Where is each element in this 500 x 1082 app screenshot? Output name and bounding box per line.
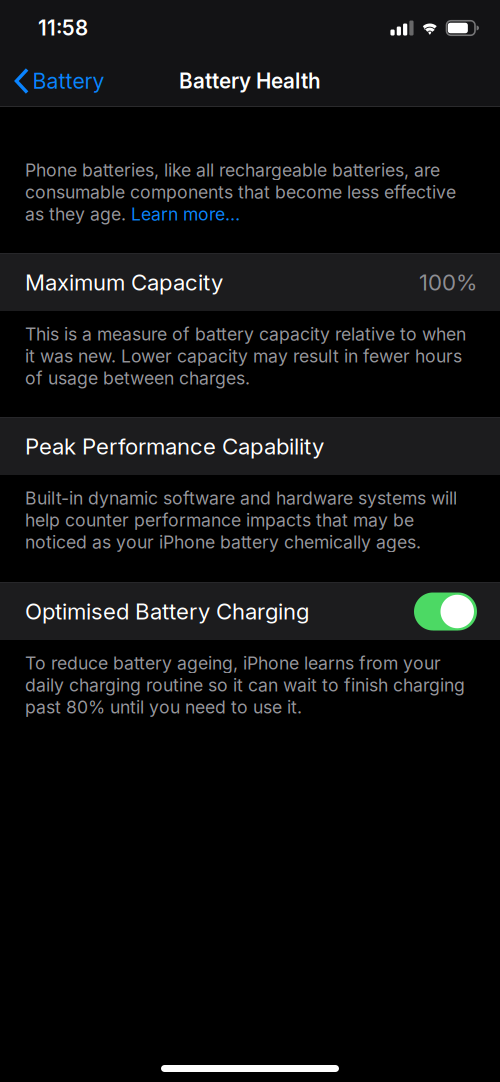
button[interactable]: Learn more… xyxy=(131,203,240,225)
button[interactable]: Optimised Battery Charging xyxy=(0,582,500,640)
staticText: This is a measure of battery capacity re… xyxy=(25,323,466,345)
staticText: consumable components that become less e… xyxy=(25,181,456,203)
staticText: Battery Health xyxy=(179,68,321,93)
staticText: it was new. Lower capacity may result in… xyxy=(25,345,462,367)
staticText: Learn more… xyxy=(131,203,240,225)
staticText: Optimised Battery Charging xyxy=(25,598,309,625)
staticText: help counter performance impacts that ma… xyxy=(25,509,414,531)
staticText: To reduce battery ageing, iPhone learns … xyxy=(25,652,441,674)
staticText: 11:58 xyxy=(38,15,88,40)
button[interactable]: Maximum Capacity xyxy=(0,253,500,311)
staticText: as they age. xyxy=(25,203,131,225)
staticText: Phone batteries, like all rechargeable b… xyxy=(25,159,440,181)
staticText: Battery xyxy=(32,68,104,94)
staticText: Maximum Capacity xyxy=(25,269,223,296)
staticText: Built-in dynamic software and hardware s… xyxy=(25,487,457,509)
staticText: daily charging routine so it can wait to… xyxy=(25,674,465,696)
staticText: noticed as your iPhone battery chemicall… xyxy=(25,531,421,553)
button[interactable]: Battery xyxy=(0,56,116,106)
staticText: Peak Performance Capability xyxy=(25,433,324,460)
staticText: past 80% until you need to use it. xyxy=(25,696,302,718)
staticText: of usage between charges. xyxy=(25,367,250,389)
staticText: 100% xyxy=(419,269,477,296)
button[interactable]: Peak Performance Capability xyxy=(0,417,500,475)
